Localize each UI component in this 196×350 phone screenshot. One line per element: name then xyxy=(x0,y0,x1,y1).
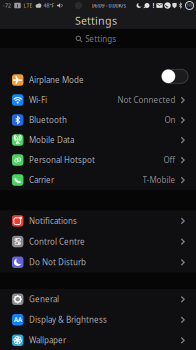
staticText: On xyxy=(164,115,175,125)
button[interactable]: Control Centre xyxy=(0,231,196,251)
staticText: 06:09 - 0.00K/s xyxy=(91,2,126,9)
staticText: Notifications xyxy=(29,215,77,226)
staticText: Settings xyxy=(75,13,117,28)
staticText: LTE xyxy=(23,2,32,9)
staticText: Carrier xyxy=(29,175,54,185)
staticText: Settings xyxy=(85,34,116,44)
staticText: Airplane Mode xyxy=(29,75,84,85)
staticText: Bluetooth xyxy=(29,115,67,125)
staticText: Wallpaper xyxy=(29,335,66,345)
staticText: ! xyxy=(152,1,154,10)
button[interactable]: Notifications xyxy=(0,211,196,231)
button[interactable]: AA xyxy=(0,310,196,330)
staticText: Display & Brightness xyxy=(29,314,107,325)
staticText: 48°F xyxy=(43,2,54,9)
staticText: Off xyxy=(163,155,175,165)
staticText: -72 xyxy=(3,2,11,9)
staticText: Do Not Disturb xyxy=(29,257,86,267)
button[interactable]: Wallpaper xyxy=(0,330,196,350)
staticText: Wi-Fi xyxy=(29,95,47,105)
button[interactable]: Airplane Mode xyxy=(0,70,196,90)
staticText: General xyxy=(29,294,59,304)
button[interactable]: Do Not Disturb xyxy=(0,252,196,272)
staticText: T-Mobile xyxy=(142,175,175,185)
staticText: Mobile Data xyxy=(29,135,74,145)
staticText: Personal Hotspot xyxy=(29,155,95,165)
button[interactable]: Personal Hotspot xyxy=(0,150,196,170)
staticText: 100 xyxy=(186,4,192,7)
staticText: AA xyxy=(14,315,22,324)
button[interactable]: General xyxy=(0,289,196,309)
staticText: Control Centre xyxy=(29,236,85,247)
button[interactable]: Carrier xyxy=(0,170,196,190)
button[interactable]: Bluetooth xyxy=(0,110,196,130)
button[interactable]: Settings xyxy=(36,32,156,46)
button[interactable]: Mobile Data xyxy=(0,130,196,150)
staticText: Not Connected xyxy=(117,95,175,105)
button[interactable]: Wi-Fi xyxy=(0,90,196,110)
